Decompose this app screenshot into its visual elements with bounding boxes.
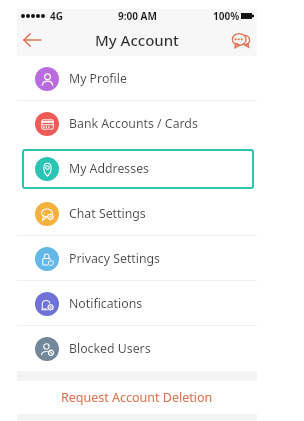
staticText: 100% <box>213 9 240 23</box>
staticText: Bank Accounts / Cards <box>69 115 198 132</box>
staticText: Request Account Deletion <box>61 389 213 406</box>
button[interactable]: My Addresses <box>17 146 257 191</box>
button[interactable]: My Profile <box>17 56 257 101</box>
button[interactable]: Blocked Users <box>17 326 257 371</box>
staticText: My Profile <box>69 70 127 87</box>
button[interactable]: Privacy Settings <box>17 236 257 281</box>
button[interactable]: Notifications <box>17 281 257 326</box>
button[interactable]: Chat Settings <box>17 191 257 236</box>
staticText: 9:00 AM <box>118 9 157 23</box>
staticText: Blocked Users <box>69 340 151 357</box>
staticText: Chat Settings <box>69 205 146 222</box>
button[interactable]: Request Account Deletion <box>17 381 257 414</box>
button[interactable]: Chat <box>229 28 253 52</box>
button[interactable]: Back <box>19 27 45 53</box>
staticText: My Addresses <box>69 160 149 177</box>
staticText: Privacy Settings <box>69 250 160 267</box>
staticText: Notifications <box>69 295 143 312</box>
staticText: My Account <box>95 30 179 50</box>
button[interactable]: Bank Accounts / Cards <box>17 101 257 146</box>
staticText: 4G <box>50 9 63 23</box>
